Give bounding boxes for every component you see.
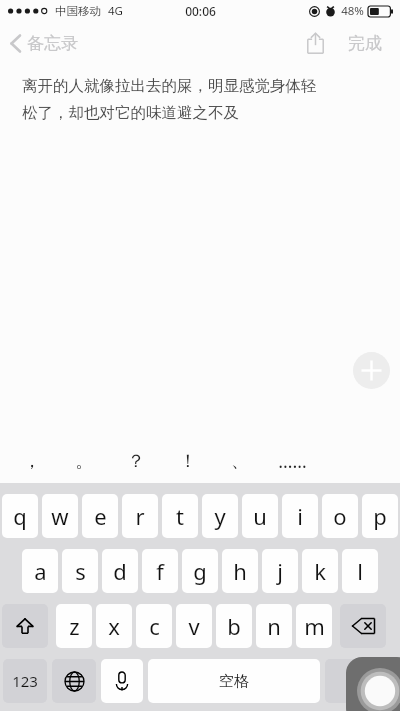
button[interactable]: m bbox=[296, 604, 332, 648]
staticText: 离开的人就像拉出去的屎，明显感觉身体轻 bbox=[22, 76, 317, 96]
staticText: 完成 bbox=[348, 33, 382, 54]
button[interactable]: b bbox=[216, 604, 252, 648]
staticText: v bbox=[188, 611, 200, 641]
button[interactable]: r bbox=[122, 494, 158, 538]
button[interactable]: 。 bbox=[58, 441, 110, 481]
button[interactable]: ！ bbox=[162, 441, 214, 481]
button[interactable]: 空格 bbox=[148, 659, 320, 703]
button[interactable]: x bbox=[96, 604, 132, 648]
button[interactable]: o bbox=[322, 494, 358, 538]
button[interactable]: Add bbox=[353, 352, 390, 389]
staticText: 、 bbox=[231, 450, 249, 473]
staticText: p bbox=[373, 501, 387, 531]
staticText: 4G bbox=[108, 3, 123, 19]
staticText: t bbox=[176, 501, 184, 531]
staticText: m bbox=[304, 611, 325, 641]
staticText: 123 bbox=[12, 671, 38, 691]
staticText: n bbox=[267, 611, 281, 641]
button[interactable]: ？ bbox=[110, 441, 162, 481]
staticText: e bbox=[94, 501, 107, 531]
button[interactable]: z bbox=[56, 604, 92, 648]
button[interactable]: t bbox=[162, 494, 198, 538]
staticText: q bbox=[13, 501, 27, 531]
staticText: ， bbox=[23, 450, 41, 473]
staticText: b bbox=[227, 611, 241, 641]
button[interactable]: 换行 bbox=[325, 659, 397, 703]
button[interactable]: q bbox=[2, 494, 38, 538]
staticText: o bbox=[333, 501, 347, 531]
button[interactable]: Voice input bbox=[101, 659, 143, 703]
button[interactable]: 备忘录 bbox=[0, 29, 88, 58]
staticText: 换行 bbox=[346, 672, 376, 691]
button[interactable]: ， bbox=[6, 441, 58, 481]
staticText: h bbox=[233, 556, 247, 586]
staticText: y bbox=[214, 501, 226, 531]
staticText: 48% bbox=[341, 3, 364, 19]
staticText: x bbox=[108, 611, 120, 641]
staticText: 备忘录 bbox=[27, 33, 78, 54]
button[interactable]: s bbox=[62, 549, 98, 593]
staticText: f bbox=[156, 556, 164, 586]
button[interactable]: j bbox=[262, 549, 298, 593]
button[interactable]: k bbox=[302, 549, 338, 593]
button[interactable]: a bbox=[22, 549, 58, 593]
staticText: 松了，却也对它的味道避之不及 bbox=[22, 103, 239, 123]
staticText: …… bbox=[278, 449, 307, 474]
button[interactable]: y bbox=[202, 494, 238, 538]
button[interactable]: 123 bbox=[3, 659, 47, 703]
staticText: r bbox=[135, 501, 145, 531]
button[interactable]: w bbox=[42, 494, 78, 538]
button[interactable]: AssistiveTouch bbox=[346, 657, 400, 711]
button[interactable]: 完成 bbox=[344, 27, 386, 60]
staticText: d bbox=[113, 556, 127, 586]
button[interactable]: …… bbox=[266, 441, 318, 481]
staticText: i bbox=[297, 501, 303, 531]
button[interactable]: d bbox=[102, 549, 138, 593]
staticText: u bbox=[253, 501, 267, 531]
staticText: l bbox=[357, 556, 363, 586]
staticText: a bbox=[34, 556, 47, 586]
staticText: 空格 bbox=[219, 672, 249, 691]
staticText: j bbox=[277, 556, 283, 586]
button[interactable]: i bbox=[282, 494, 318, 538]
button[interactable]: f bbox=[142, 549, 178, 593]
staticText: c bbox=[149, 611, 160, 641]
button[interactable]: l bbox=[342, 549, 378, 593]
button[interactable]: p bbox=[362, 494, 398, 538]
button[interactable]: Share bbox=[301, 26, 330, 60]
button[interactable]: Shift bbox=[2, 604, 48, 648]
button[interactable]: n bbox=[256, 604, 292, 648]
button[interactable]: u bbox=[242, 494, 278, 538]
staticText: 00:06 bbox=[185, 3, 216, 19]
button[interactable]: 、 bbox=[214, 441, 266, 481]
staticText: ？ bbox=[127, 450, 145, 473]
staticText: s bbox=[75, 556, 86, 586]
button[interactable]: v bbox=[176, 604, 212, 648]
button[interactable]: Backspace bbox=[340, 604, 386, 648]
staticText: k bbox=[314, 556, 326, 586]
button[interactable]: Switch language bbox=[52, 659, 96, 703]
staticText: w bbox=[51, 501, 69, 531]
staticText: 。 bbox=[75, 450, 93, 473]
button[interactable]: g bbox=[182, 549, 218, 593]
staticText: z bbox=[69, 611, 80, 641]
button[interactable]: c bbox=[136, 604, 172, 648]
button[interactable]: h bbox=[222, 549, 258, 593]
staticText: g bbox=[193, 556, 207, 586]
button[interactable]: e bbox=[82, 494, 118, 538]
staticText: 中国移动 bbox=[55, 4, 101, 18]
staticText: ！ bbox=[179, 450, 197, 473]
